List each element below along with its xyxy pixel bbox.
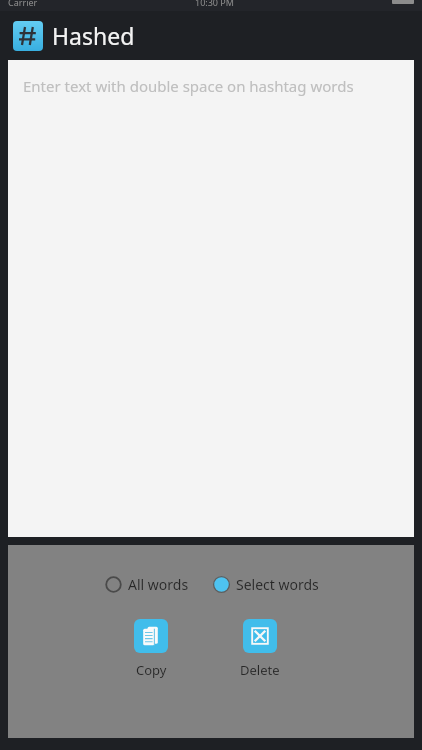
button[interactable]: Hashed app icon xyxy=(13,21,43,51)
staticText: Copy xyxy=(136,661,167,679)
staticText: Carrier xyxy=(8,0,38,7)
button[interactable]: Select words xyxy=(212,573,320,596)
button[interactable]: Delete xyxy=(238,617,282,681)
staticText: Enter text with double space on hashtag … xyxy=(23,76,354,96)
staticText: All words xyxy=(128,575,189,594)
staticText: Select words xyxy=(236,575,319,594)
button[interactable]: All words xyxy=(104,573,190,596)
staticText: Hashed xyxy=(52,20,135,51)
button[interactable]: Enter text with double space on hashtag … xyxy=(8,60,414,537)
button[interactable]: Copy xyxy=(132,617,170,681)
staticText: Delete xyxy=(240,661,280,679)
staticText: 10:30 PM xyxy=(195,0,234,7)
